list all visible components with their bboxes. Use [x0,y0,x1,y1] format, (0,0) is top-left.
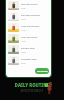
staticText: 08:30 [21,7,26,9]
staticText: Yoga and balance [21,25,40,28]
other: Workout illustration [43,81,56,99]
button[interactable]: GET STARTED [35,68,49,74]
staticText: Full body workout [21,14,40,17]
staticText: Morning stretch [21,3,38,6]
staticText: DAILY ROUTINE [0,82,64,88]
staticText: 20:05 [21,62,26,64]
button[interactable]: Evening calm [6,44,51,55]
staticText: Core and cardio [21,36,38,39]
staticText: 18:40 [21,51,26,53]
button[interactable]: Full body workout [6,11,51,22]
button[interactable]: Morning stretch [6,0,51,11]
button[interactable]: Yoga and balance [6,22,51,33]
button[interactable]: Cooldown walk [6,55,51,66]
staticText: Evening calm [21,47,35,50]
staticText: Cooldown walk [21,58,37,61]
staticText: 09:15 [21,18,26,20]
button[interactable]: Core and cardio [6,33,51,44]
staticText: 14:20 [21,40,26,42]
staticText: 11:00 [21,29,26,31]
staticText: EFFECTIVE RESULT [0,89,64,92]
staticText: GET STARTED [37,70,48,72]
